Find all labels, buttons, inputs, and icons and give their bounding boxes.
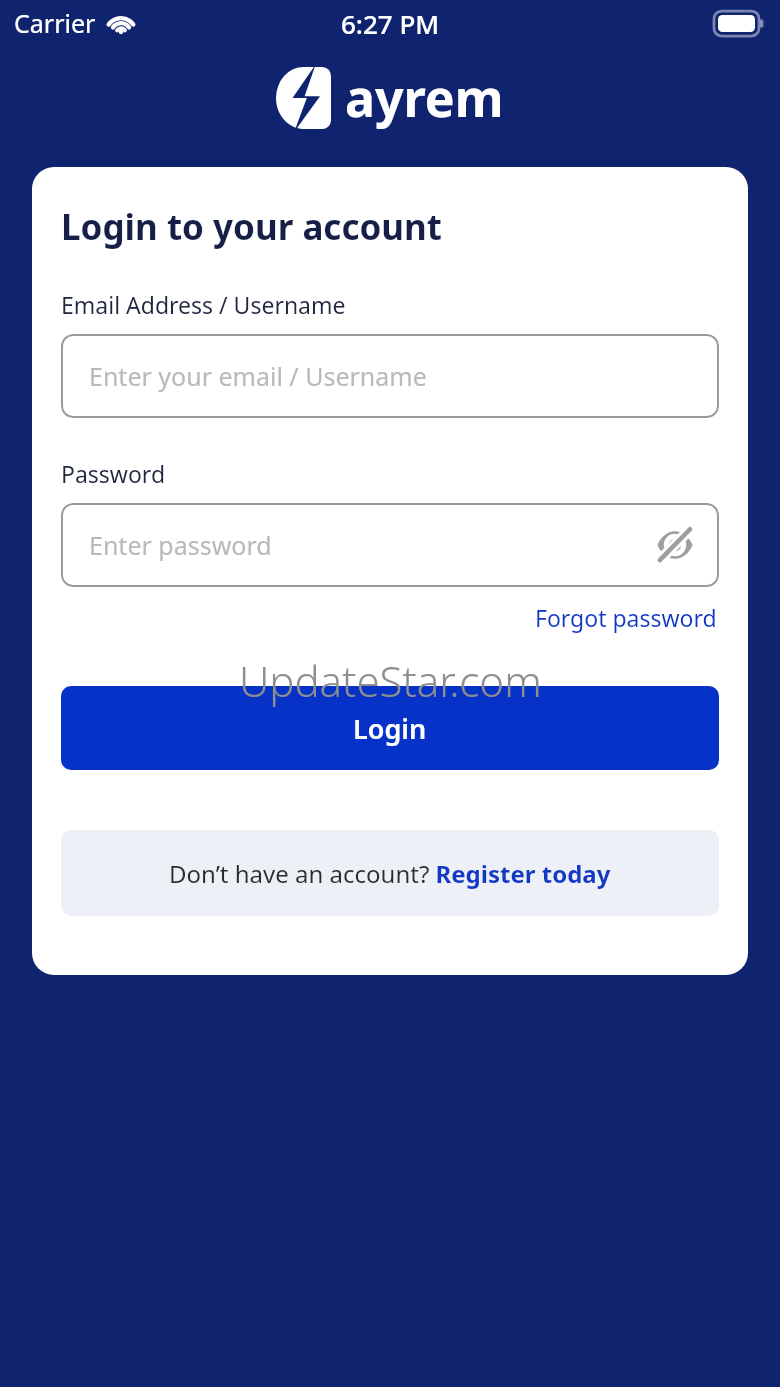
staticText: Don’t have an account? Register today: [169, 857, 611, 890]
staticText: Login: [353, 710, 427, 747]
staticText: Enter your email / Username: [89, 359, 427, 393]
staticText: Enter password: [89, 528, 272, 562]
button[interactable]: Login: [61, 686, 719, 770]
button[interactable]: Enter password: [61, 503, 719, 587]
staticText: Password: [61, 458, 166, 489]
staticText: Login to your account: [61, 203, 443, 251]
staticText: Forgot password: [535, 602, 717, 633]
staticText: Carrier: [14, 6, 96, 40]
staticText: 6:27 PM: [341, 6, 440, 41]
staticText: UpdateStar.com: [239, 652, 542, 709]
staticText: Email Address / Username: [61, 289, 346, 320]
button[interactable]: Forgot password: [533, 599, 719, 636]
button[interactable]: Enter your email / Username: [61, 334, 719, 418]
staticText: ayrem: [345, 64, 504, 132]
button[interactable]: Don’t have an account? Register today: [61, 830, 719, 916]
button[interactable]: Show password: [651, 521, 699, 569]
